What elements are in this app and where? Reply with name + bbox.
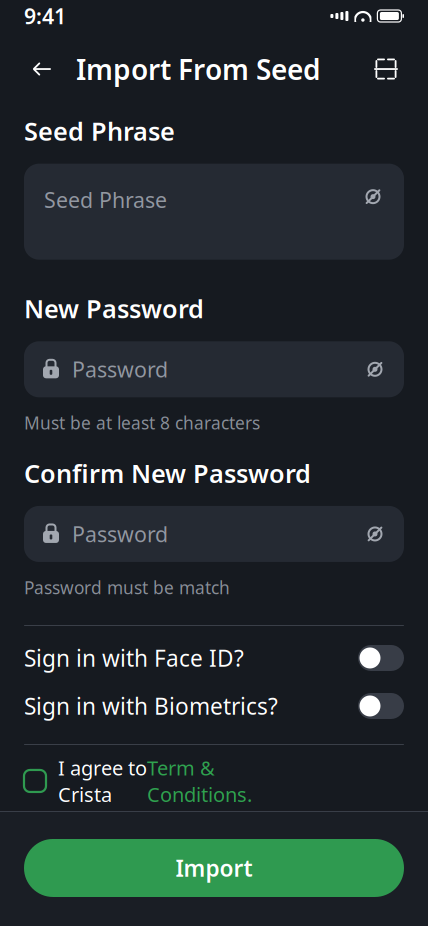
staticText: Password (72, 520, 168, 548)
staticText: Term & Conditions. (147, 754, 252, 807)
staticText: Confirm New Password (24, 456, 311, 490)
button[interactable]: Back (22, 49, 62, 89)
button[interactable]: Seed Phrase (24, 164, 404, 260)
button[interactable]: Sign in with Face ID? (24, 636, 404, 680)
staticText: Import (175, 853, 252, 883)
staticText: Seed Phrase (44, 186, 167, 214)
button[interactable]: I agree to Crista (24, 759, 404, 803)
staticText: Password (72, 355, 168, 383)
button[interactable]: Sign in with Biometrics? (24, 684, 404, 728)
staticText: I agree to Crista (58, 754, 147, 807)
button[interactable]: Password (24, 506, 404, 562)
button[interactable]: Scan QR code (366, 49, 406, 89)
staticText: Import From Seed (76, 50, 321, 88)
staticText: Sign in with Biometrics? (24, 691, 278, 721)
staticText: New Password (24, 292, 204, 325)
button[interactable]: Import (24, 839, 404, 897)
staticText: Password must be match (24, 576, 230, 599)
button[interactable]: Password (24, 341, 404, 397)
staticText: Seed Phrase (24, 114, 175, 148)
staticText: Must be at least 8 characters (24, 411, 260, 434)
staticText: 9:41 (24, 2, 66, 30)
staticText: Sign in with Face ID? (24, 643, 244, 673)
